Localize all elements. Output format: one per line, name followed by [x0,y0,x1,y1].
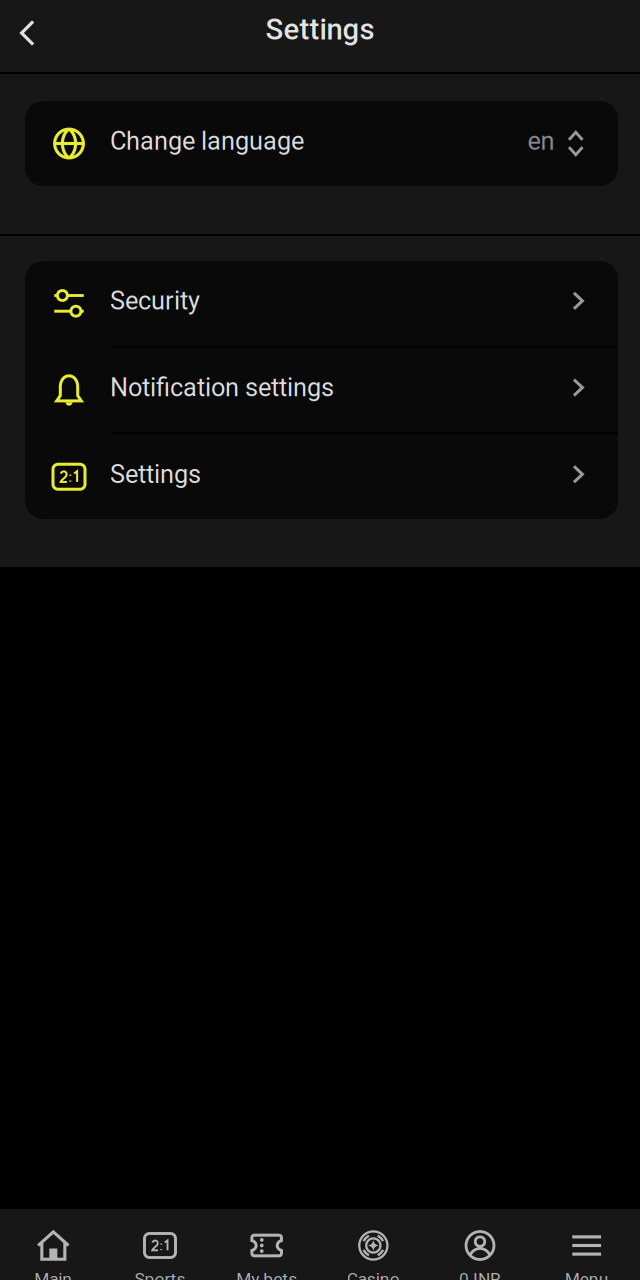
staticText: Notification settings [110,373,334,402]
button[interactable]: 0 INR [427,1209,533,1280]
button[interactable]: Change language [25,101,618,186]
staticText: Settings [110,459,201,489]
button[interactable]: Sports [107,1209,213,1280]
staticText: 0 INR [459,1269,501,1280]
button[interactable]: My bets [213,1209,320,1280]
button[interactable]: Security [25,261,618,346]
button[interactable]: Main [0,1209,107,1280]
staticText: en [527,126,554,156]
staticText: Casino [347,1269,400,1280]
staticText: Sports [134,1269,185,1280]
button[interactable]: Back [0,0,55,74]
button[interactable]: Settings [25,434,618,519]
button[interactable]: Menu [533,1209,640,1280]
staticText: Main [34,1269,72,1280]
button[interactable]: Notification settings [25,348,618,432]
staticText: Change language [110,126,304,156]
button[interactable]: Casino [320,1209,427,1280]
staticText: My bets [236,1269,297,1280]
staticText: Settings [265,12,374,47]
staticText: Security [110,286,200,316]
staticText: Menu [565,1269,609,1280]
